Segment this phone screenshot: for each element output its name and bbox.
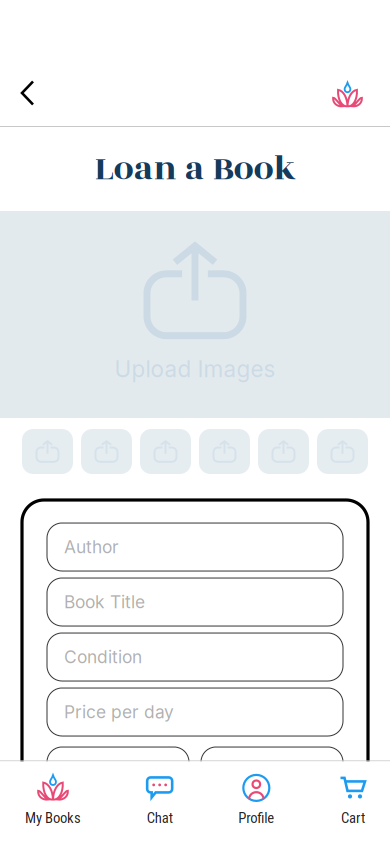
button[interactable]: Book Title bbox=[47, 578, 343, 626]
button[interactable]: Author bbox=[47, 523, 343, 571]
button[interactable]: Add image bbox=[199, 429, 250, 474]
button[interactable]: Price per day bbox=[47, 688, 343, 736]
button[interactable]: Add image bbox=[140, 429, 191, 474]
staticText: Cart bbox=[341, 809, 365, 827]
button[interactable]: Add image bbox=[317, 429, 368, 474]
button[interactable]: Condition bbox=[47, 633, 343, 681]
staticText: Condition bbox=[64, 646, 142, 667]
button[interactable]: Add image bbox=[81, 429, 132, 474]
staticText: Price per day bbox=[64, 701, 174, 722]
button[interactable]: Back bbox=[0, 71, 64, 115]
button[interactable]: Profile bbox=[238, 761, 274, 846]
button[interactable]: Cart bbox=[339, 761, 367, 846]
button[interactable] bbox=[201, 747, 343, 795]
staticText: My Books bbox=[25, 809, 81, 827]
button[interactable]: Home bbox=[332, 69, 390, 117]
staticText: Loan a Book bbox=[94, 143, 295, 194]
button[interactable] bbox=[47, 747, 189, 795]
button[interactable]: Add image bbox=[258, 429, 309, 474]
staticText: Author bbox=[64, 536, 119, 557]
staticText: Upload Images bbox=[114, 355, 275, 383]
button[interactable]: Chat bbox=[146, 761, 174, 846]
staticText: Book Title bbox=[64, 591, 145, 612]
button[interactable]: My Books bbox=[25, 761, 81, 846]
staticText: Chat bbox=[147, 809, 173, 827]
staticText: Profile bbox=[238, 809, 274, 827]
button[interactable]: Add image bbox=[22, 429, 73, 474]
